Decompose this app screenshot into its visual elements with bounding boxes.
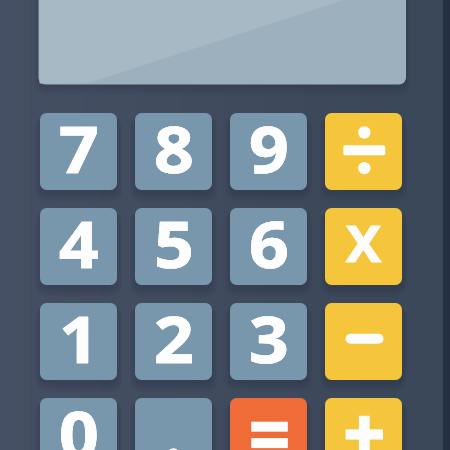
staticText: 7 — [59, 104, 99, 181]
staticText: 5 — [154, 199, 194, 276]
staticText: 3 — [249, 294, 289, 371]
button[interactable]: 8 — [135, 113, 212, 190]
staticText: 9 — [249, 104, 289, 181]
staticText: 6 — [249, 199, 289, 276]
staticText: 1 — [59, 294, 99, 371]
button[interactable]: 9 — [230, 113, 307, 190]
button[interactable]: Divide — [325, 113, 402, 190]
staticText: 1 — [59, 294, 99, 371]
button[interactable]: 4 — [40, 208, 117, 285]
staticText: 4 — [59, 199, 99, 276]
button[interactable]: Subtract — [325, 303, 402, 380]
button[interactable]: Decimal point — [135, 398, 212, 450]
button[interactable]: X — [325, 208, 402, 285]
button[interactable]: Equals — [230, 398, 307, 450]
button[interactable]: 1 — [40, 303, 117, 380]
button[interactable]: Add — [325, 398, 402, 450]
staticText: 9 — [249, 104, 289, 181]
button[interactable]: 6 — [230, 208, 307, 285]
staticText: 0 — [59, 389, 99, 450]
staticText: 2 — [154, 294, 194, 371]
staticText: 7 — [59, 104, 99, 181]
staticText: 4 — [59, 199, 99, 276]
button[interactable]: 3 — [230, 303, 307, 380]
staticText: 8 — [154, 104, 194, 181]
staticText: 8 — [154, 104, 194, 181]
staticText: 2 — [154, 294, 194, 371]
button[interactable]: 5 — [135, 208, 212, 285]
staticText: 6 — [249, 199, 289, 276]
button[interactable]: 7 — [40, 113, 117, 190]
button[interactable]: 2 — [135, 303, 212, 380]
staticText: 0 — [59, 389, 99, 450]
staticText: X — [345, 207, 382, 276]
staticText: 3 — [249, 294, 289, 371]
button[interactable]: 0 — [40, 398, 117, 450]
staticText: X — [345, 207, 382, 276]
staticText: 5 — [154, 199, 194, 276]
